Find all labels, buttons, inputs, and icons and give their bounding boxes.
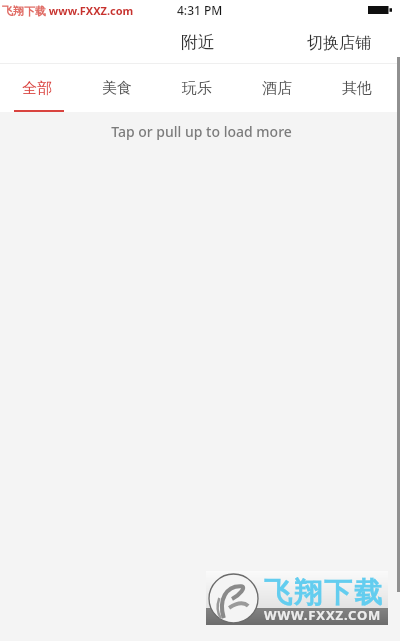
button[interactable]: 切换店铺 bbox=[293, 25, 400, 61]
staticText: 切换店铺 bbox=[307, 33, 371, 53]
staticText: 美食 bbox=[102, 79, 132, 98]
staticText: 飞翔下载 bbox=[2, 4, 46, 18]
staticText: 附近 bbox=[181, 32, 215, 53]
button[interactable]: 玩乐 bbox=[157, 64, 237, 112]
button[interactable]: 酒店 bbox=[237, 64, 317, 112]
staticText: 全部 bbox=[22, 79, 52, 98]
staticText: WWW.FXXZ.COM bbox=[264, 606, 382, 624]
staticText: 其他 bbox=[342, 79, 372, 98]
other: Battery full bbox=[368, 6, 392, 14]
button[interactable]: 美食 bbox=[77, 64, 157, 112]
staticText: 4:31 PM bbox=[177, 2, 223, 18]
staticText: 玩乐 bbox=[182, 79, 212, 98]
button[interactable]: 全部 bbox=[0, 64, 77, 112]
staticText: Tap or pull up to load more bbox=[111, 122, 292, 141]
button[interactable]: 其他 bbox=[317, 64, 397, 112]
staticText: 酒店 bbox=[262, 79, 292, 98]
staticText: 飞翔下载 bbox=[263, 575, 383, 610]
staticText: www.FXXZ.com bbox=[46, 3, 134, 18]
